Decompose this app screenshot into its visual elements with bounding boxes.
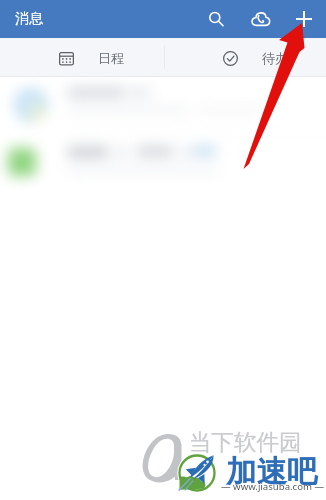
button[interactable]: Search [194,0,238,38]
staticText: 消息 [15,10,43,28]
staticText: — www.jiasuba.com — [221,480,325,493]
button[interactable]: 消息 [10,6,48,32]
button[interactable]: 日程 [45,44,138,72]
staticText: 待办 [262,50,288,66]
button[interactable]: Add [282,0,326,38]
button[interactable]: Cloud phone [238,0,282,38]
staticText: 加速吧 [226,453,318,491]
button[interactable]: Conversation 2 [0,138,326,199]
button[interactable]: Conversation 1 [0,77,326,138]
button[interactable]: 待办 [209,44,302,72]
staticText: 日程 [98,50,124,66]
staticText: 当下软件园 [189,428,302,456]
